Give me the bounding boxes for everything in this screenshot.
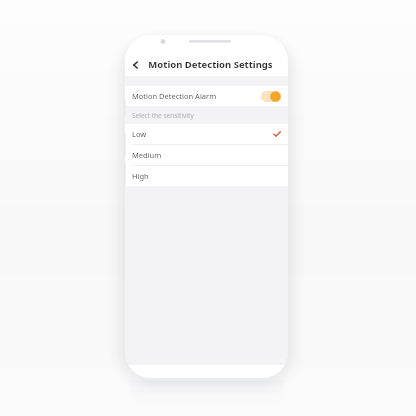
staticText: Medium [132,150,162,160]
button[interactable]: Motion Detection Alarm [125,86,288,106]
staticText: Motion Detection Alarm [132,91,217,101]
button[interactable]: Back [125,53,147,76]
button[interactable]: High [125,166,288,186]
staticText: High [132,171,149,181]
staticText: Motion Detection Settings [148,58,273,71]
staticText: Select the sensitivity [132,111,194,120]
button[interactable]: Medium [125,145,288,165]
button[interactable]: Low [125,124,288,144]
button[interactable]: Motion Detection Alarm toggle [261,91,281,102]
staticText: Low [132,129,147,139]
